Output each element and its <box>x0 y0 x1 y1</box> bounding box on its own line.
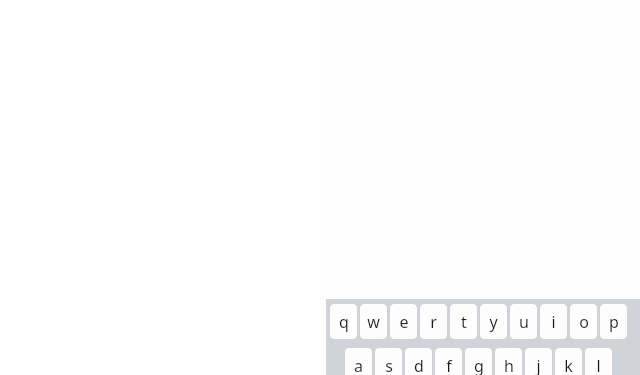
button[interactable]: s <box>375 348 402 375</box>
button[interactable]: y <box>480 304 507 339</box>
button[interactable]: l <box>585 348 612 375</box>
staticText: q <box>339 311 349 333</box>
staticText: f <box>446 355 452 375</box>
button[interactable]: p <box>600 304 627 339</box>
staticText: h <box>504 355 514 375</box>
staticText: k <box>564 355 573 375</box>
button[interactable]: w <box>360 304 387 339</box>
button[interactable]: t <box>450 304 477 339</box>
button[interactable]: a <box>345 348 372 375</box>
staticText: s <box>385 355 393 375</box>
staticText: r <box>430 311 437 333</box>
button[interactable]: e <box>390 304 417 339</box>
staticText: i <box>551 311 556 333</box>
staticText: j <box>536 355 541 375</box>
staticText: p <box>609 311 619 333</box>
staticText: u <box>519 311 529 333</box>
button[interactable]: d <box>405 348 432 375</box>
staticText: t <box>461 311 467 333</box>
button[interactable]: f <box>435 348 462 375</box>
staticText: o <box>579 311 589 333</box>
button[interactable]: g <box>465 348 492 375</box>
button[interactable]: r <box>420 304 447 339</box>
button[interactable]: k <box>555 348 582 375</box>
button[interactable]: q <box>330 304 357 339</box>
staticText: d <box>414 355 424 375</box>
staticText: w <box>367 311 380 333</box>
button[interactable]: o <box>570 304 597 339</box>
staticText: e <box>399 311 409 333</box>
button[interactable]: u <box>510 304 537 339</box>
button[interactable]: j <box>525 348 552 375</box>
staticText: a <box>354 355 363 375</box>
button[interactable]: h <box>495 348 522 375</box>
staticText: y <box>489 311 498 333</box>
staticText: g <box>474 355 484 375</box>
staticText: l <box>596 355 601 375</box>
button[interactable]: i <box>540 304 567 339</box>
